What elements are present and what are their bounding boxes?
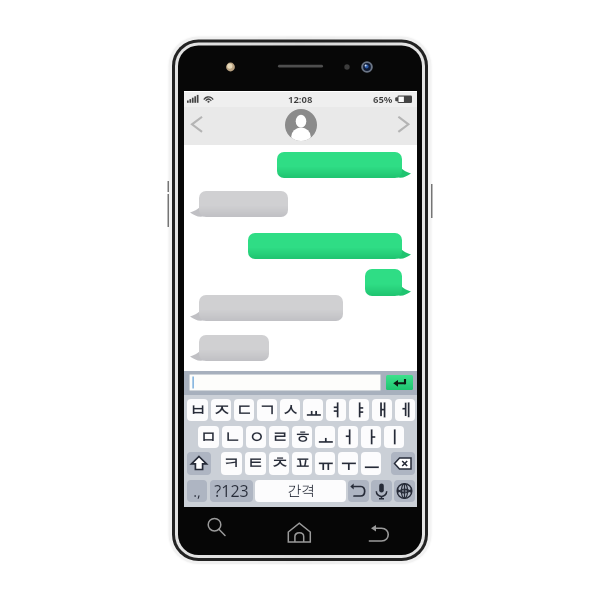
button[interactable]: Back: [184, 107, 214, 145]
button[interactable]: ㅔ: [395, 399, 415, 421]
staticText: ㅔ: [397, 400, 414, 421]
button[interactable]: ㅍ: [292, 452, 312, 475]
staticText: ㅑ: [351, 400, 368, 421]
button[interactable]: .,: [187, 480, 207, 502]
button[interactable]: ㄱ: [257, 399, 277, 421]
staticText: ㄱ: [259, 400, 276, 421]
button[interactable]: ?123: [210, 480, 253, 502]
staticText: .,: [193, 482, 201, 501]
button[interactable]: 간격: [255, 480, 346, 502]
staticText: ㅗ: [317, 427, 334, 448]
staticText: ㅐ: [374, 400, 391, 421]
button[interactable]: ㅌ: [245, 452, 266, 475]
staticText: ㅅ: [282, 400, 299, 421]
staticText: ㅈ: [213, 400, 230, 421]
button[interactable]: ㅎ: [292, 426, 312, 448]
button[interactable]: ㅓ: [338, 426, 358, 448]
button[interactable]: ㅑ: [349, 399, 369, 421]
staticText: ㄴ: [224, 427, 241, 448]
staticText: ㅜ: [340, 453, 357, 474]
staticText: ㅂ: [189, 400, 206, 421]
button[interactable]: Contact avatar: [285, 109, 317, 141]
button[interactable]: Backspace: [391, 452, 415, 475]
staticText: ㅇ: [248, 427, 265, 448]
button[interactable]: ㅐ: [372, 399, 392, 421]
staticText: ㅕ: [328, 400, 345, 421]
button[interactable]: Shift: [187, 452, 211, 475]
staticText: ㄷ: [236, 400, 253, 421]
staticText: 12:08: [288, 93, 313, 106]
staticText: ㅠ: [317, 453, 334, 474]
button[interactable]: ㅗ: [315, 426, 335, 448]
button[interactable]: Forward: [387, 107, 417, 145]
button[interactable]: ㅛ: [303, 399, 323, 421]
button[interactable]: Search: [206, 518, 232, 544]
button[interactable]: [189, 374, 381, 391]
staticText: ㅊ: [271, 453, 288, 474]
button[interactable]: ㄷ: [234, 399, 254, 421]
staticText: ㅍ: [294, 453, 311, 474]
button[interactable]: ㅂ: [187, 399, 208, 421]
staticText: ㅏ: [363, 427, 380, 448]
button[interactable]: Enter: [348, 480, 369, 502]
button[interactable]: ㄹ: [269, 426, 289, 448]
button[interactable]: [187, 293, 355, 327]
button[interactable]: ㅅ: [280, 399, 300, 421]
button[interactable]: ㅜ: [338, 452, 358, 475]
button[interactable]: Home: [287, 518, 313, 544]
button[interactable]: Change language: [394, 480, 415, 502]
button[interactable]: Voice input: [371, 480, 392, 502]
staticText: ㅛ: [305, 400, 322, 421]
button[interactable]: ㄴ: [222, 426, 243, 448]
button[interactable]: ㅡ: [361, 452, 381, 475]
staticText: 65%: [373, 93, 393, 106]
button[interactable]: [236, 231, 414, 265]
staticText: ㅋ: [223, 453, 240, 474]
staticText: ㅣ: [386, 427, 403, 448]
button[interactable]: Send: [386, 375, 413, 390]
button[interactable]: ㅊ: [269, 452, 289, 475]
button[interactable]: ㅋ: [221, 452, 242, 475]
button[interactable]: ㅇ: [246, 426, 266, 448]
staticText: ?123: [214, 480, 249, 502]
staticText: ㅁ: [200, 427, 217, 448]
button[interactable]: [265, 150, 414, 184]
button[interactable]: ㅈ: [211, 399, 231, 421]
staticText: 간격: [287, 482, 315, 500]
staticText: ㅡ: [363, 453, 380, 474]
button[interactable]: Back: [367, 518, 393, 544]
button[interactable]: ㅕ: [326, 399, 346, 421]
staticText: ㅎ: [294, 427, 311, 448]
staticText: ㅓ: [340, 427, 357, 448]
staticText: ㄹ: [271, 427, 288, 448]
button[interactable]: ㅏ: [361, 426, 381, 448]
button[interactable]: ㅁ: [198, 426, 219, 448]
button[interactable]: [353, 267, 414, 302]
staticText: ㅌ: [247, 453, 264, 474]
button[interactable]: [187, 333, 281, 367]
button[interactable]: ㅣ: [384, 426, 404, 448]
button[interactable]: ㅠ: [315, 452, 335, 475]
button[interactable]: [187, 189, 300, 223]
